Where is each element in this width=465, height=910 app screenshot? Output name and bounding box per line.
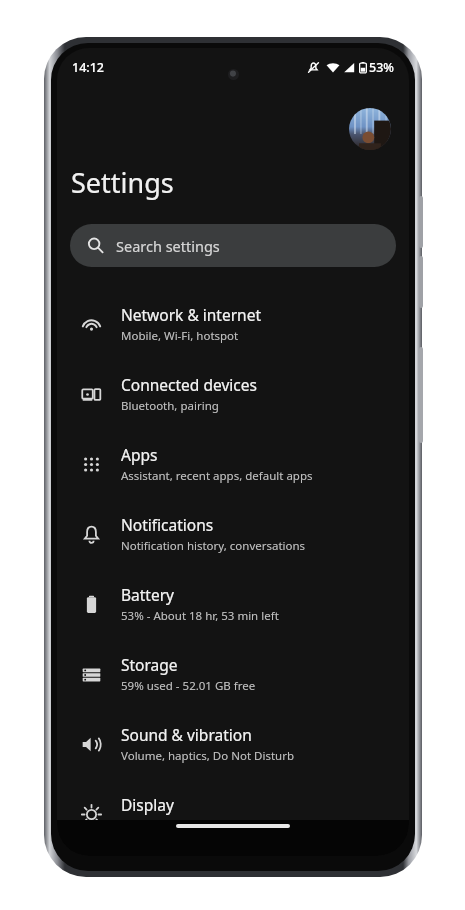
button[interactable]: Search settings [70, 224, 396, 267]
staticText: Mobile, Wi-Fi, hotspot [121, 328, 239, 344]
staticText: Notifications [121, 514, 214, 535]
button[interactable]: Battery [57, 569, 409, 639]
staticText: Bluetooth, pairing [121, 398, 219, 414]
staticText: 53% - About 18 hr, 53 min left [121, 608, 279, 624]
staticText: Settings [71, 164, 174, 201]
staticText: Connected devices [121, 374, 257, 395]
button[interactable]: Notifications [57, 499, 409, 569]
staticText: Volume, haptics, Do Not Disturb [121, 748, 294, 764]
staticText: 53% [369, 59, 394, 76]
button[interactable]: Apps [57, 429, 409, 499]
staticText: 14:12 [72, 59, 105, 76]
staticText: Brightness, dark theme [121, 818, 248, 834]
staticText: Display [121, 794, 174, 815]
staticText: Sound & vibration [121, 724, 252, 745]
staticText: 59% used - 52.01 GB free [121, 678, 256, 694]
button[interactable]: Sound & vibration [57, 709, 409, 779]
staticText: Apps [121, 444, 158, 465]
button[interactable]: Network & internet [57, 289, 409, 359]
staticText: Search settings [116, 236, 220, 256]
staticText: Assistant, recent apps, default apps [121, 468, 313, 484]
staticText: Battery [121, 584, 175, 605]
button[interactable]: Connected devices [57, 359, 409, 429]
staticText: Notification history, conversations [121, 538, 306, 554]
staticText: Storage [121, 654, 178, 675]
button[interactable]: Display [57, 779, 409, 849]
button[interactable]: Account [349, 108, 391, 150]
button[interactable]: Storage [57, 639, 409, 709]
staticText: Network & internet [121, 304, 261, 325]
